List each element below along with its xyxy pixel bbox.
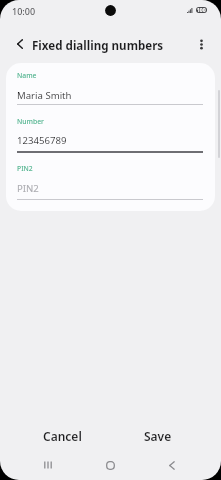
button[interactable]: Back — [142, 452, 205, 478]
staticText: Cancel — [43, 428, 82, 444]
button[interactable]: Home — [79, 452, 142, 478]
staticText: Number — [17, 117, 44, 126]
staticText: PIN2 — [17, 182, 39, 195]
button[interactable]: More options — [189, 32, 213, 56]
staticText: 10:00 — [12, 5, 36, 17]
staticText: Name — [17, 71, 37, 80]
staticText: Maria Smith — [17, 89, 72, 102]
staticText: Fixed dialling numbers — [32, 38, 164, 54]
staticText: Save — [144, 428, 172, 444]
staticText: PIN2 — [17, 164, 33, 173]
staticText: 100 — [197, 7, 206, 13]
button[interactable]: Back — [7, 32, 31, 56]
button[interactable]: Cancel — [15, 423, 110, 449]
staticText: 123456789 — [17, 134, 67, 147]
button[interactable]: Save — [110, 423, 206, 449]
button[interactable]: Recents — [16, 452, 79, 478]
